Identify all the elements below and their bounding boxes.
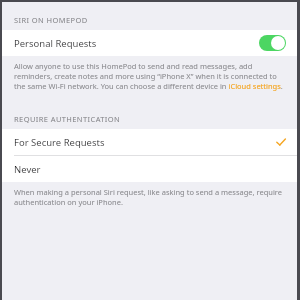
button[interactable]: Never: [2, 156, 297, 182]
staticText: Allow anyone to use this HomePod to send…: [14, 61, 283, 91]
staticText: For Secure Requests: [14, 136, 105, 149]
staticText: REQUIRE AUTHENTICATION: [14, 114, 121, 124]
staticText: When making a personal Siri request, lik…: [14, 187, 283, 207]
staticText: Personal Requests: [14, 37, 97, 50]
button[interactable]: For Secure Requests: [2, 129, 297, 155]
other: Selected: [276, 137, 286, 147]
staticText: SIRI ON HOMEPOD: [14, 15, 88, 25]
button[interactable]: Personal Requests toggle: [259, 35, 286, 51]
staticText: Never: [14, 163, 41, 176]
button[interactable]: Personal Requests: [2, 30, 297, 56]
